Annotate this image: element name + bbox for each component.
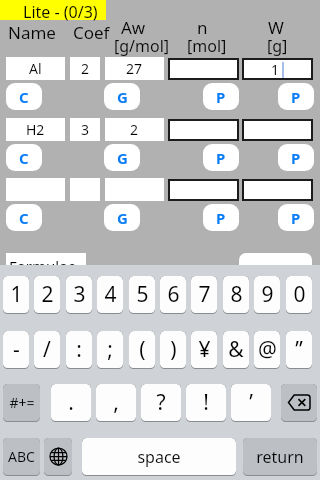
staticText: G [117,87,128,107]
button[interactable] [242,179,313,201]
staticText: 2 [41,280,54,309]
staticText: C [19,208,29,228]
button[interactable]: G [104,83,140,110]
button[interactable]: G [104,144,140,171]
button[interactable]: P [278,144,314,171]
button[interactable]: 8 [223,276,249,313]
staticText: n [197,16,208,39]
staticText: 2 [81,59,90,78]
button[interactable]: ! [186,384,226,421]
button[interactable]: ) [160,331,186,368]
staticText: G [117,148,128,168]
staticText: . [68,388,74,417]
button[interactable]: P [278,83,314,110]
button[interactable]: 9 [254,276,280,313]
button[interactable]: C [6,144,42,171]
staticText: [g] [267,35,288,57]
button[interactable]: 4 [97,276,123,313]
button[interactable]: Formulae [6,253,86,279]
button[interactable]: 2 [105,118,164,141]
button[interactable] [242,119,313,141]
button[interactable]: 3 [70,118,100,141]
button[interactable]: 27 [105,57,164,80]
button[interactable]: ; [97,331,123,368]
staticText: ! [203,388,209,417]
button[interactable] [239,253,312,279]
staticText: ¥ [198,335,211,364]
button[interactable]: 7 [191,276,217,313]
button[interactable]: ABC [3,438,40,475]
staticText: 3 [73,280,86,309]
staticText: space [137,446,181,468]
staticText: Al [29,59,42,78]
button[interactable] [168,179,239,201]
button[interactable]: P [203,144,239,171]
staticText: 0 [293,280,306,309]
button[interactable]: , [96,384,136,421]
staticText: C [19,148,29,168]
staticText: [g/mol] [114,35,170,57]
staticText: ; [107,335,113,364]
staticText: ABC [8,447,35,466]
staticText: return [256,446,304,468]
staticText: ( [139,335,146,364]
button[interactable]: P [203,83,239,110]
staticText: : [76,335,82,364]
button[interactable]: #+= [3,384,40,421]
staticText: W [268,16,284,39]
staticText: 1 [10,280,23,309]
button[interactable]: 2 [70,57,100,80]
button[interactable]: 2 [34,276,60,313]
staticText: Formulae [9,256,77,276]
button[interactable]: ( [129,331,155,368]
button[interactable]: ” [286,331,312,368]
button[interactable]: H2 [6,118,65,141]
staticText: 7 [198,280,211,309]
staticText: P [216,208,226,228]
button[interactable]: Change keyboard [44,438,72,475]
button[interactable]: return [243,438,317,475]
button[interactable]: 3 [66,276,92,313]
button[interactable]: / [34,331,60,368]
staticText: 1 [271,60,280,79]
button[interactable]: Lite - (0/3) [0,0,106,20]
button[interactable]: - [3,331,29,368]
button[interactable]: G [104,204,140,231]
staticText: @ [258,335,277,364]
button[interactable]: . [51,384,91,421]
button[interactable]: ¥ [191,331,217,368]
button[interactable]: 1 [242,58,313,80]
staticText: Name [8,21,56,44]
button[interactable]: C [6,83,42,110]
button[interactable] [168,119,239,141]
button[interactable]: @ [254,331,280,368]
staticText: 5 [136,280,149,309]
button[interactable]: ’ [231,384,271,421]
button[interactable]: 1 [3,276,29,313]
staticText: 6 [167,280,180,309]
button[interactable]: ? [141,384,181,421]
staticText: 8 [230,280,243,309]
button[interactable]: P [203,204,239,231]
button[interactable]: C [6,204,42,231]
staticText: [mol] [187,35,227,57]
button[interactable]: & [223,331,249,368]
button[interactable]: 0 [286,276,312,313]
staticText: C [19,87,29,107]
button[interactable]: 6 [160,276,186,313]
staticText: 4 [104,280,117,309]
staticText: / [43,335,51,364]
button[interactable]: P [278,204,314,231]
button[interactable]: Al [6,57,65,80]
button[interactable]: Delete [281,384,317,421]
staticText: #+= [9,393,35,412]
button[interactable]: 5 [129,276,155,313]
button[interactable]: : [66,331,92,368]
staticText: 2 [130,120,139,139]
button[interactable]: space [82,438,236,475]
button[interactable] [168,58,239,80]
staticText: Lite - (0/3) [23,1,98,21]
